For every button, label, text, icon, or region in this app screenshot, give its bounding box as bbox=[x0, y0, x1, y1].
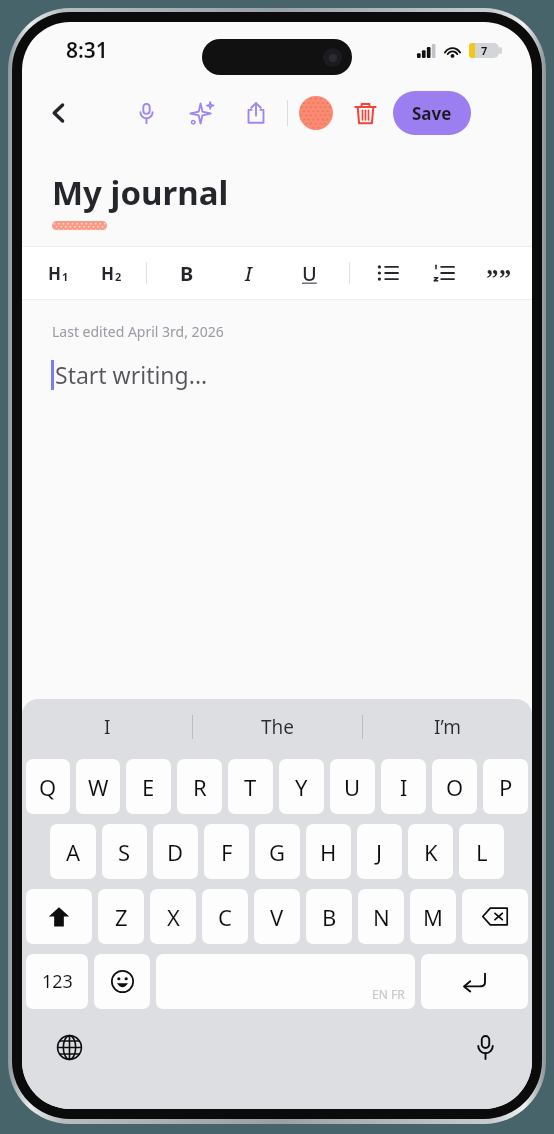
staticText: A bbox=[66, 837, 81, 867]
button[interactable]: Y bbox=[279, 759, 324, 814]
button[interactable]: J bbox=[357, 824, 402, 879]
staticText: B bbox=[180, 260, 194, 287]
staticText: 2 bbox=[115, 269, 122, 284]
button[interactable]: Q bbox=[26, 759, 70, 814]
staticText: 8:31 bbox=[66, 36, 108, 65]
staticText: 7 bbox=[481, 43, 488, 58]
button[interactable]: I bbox=[234, 259, 262, 287]
button[interactable]: Z bbox=[98, 889, 144, 944]
button[interactable]: 123 bbox=[26, 954, 88, 1009]
staticText: U bbox=[344, 772, 361, 802]
staticText: E bbox=[142, 772, 155, 802]
button[interactable]: L bbox=[459, 824, 504, 879]
staticText: O bbox=[446, 772, 464, 802]
button[interactable]: H bbox=[48, 262, 69, 285]
button[interactable]: I bbox=[381, 759, 426, 814]
button[interactable]: Save bbox=[393, 91, 471, 135]
staticText: 123 bbox=[42, 969, 73, 994]
staticText: Last edited April 3rd, 2026 bbox=[52, 322, 224, 341]
button[interactable]: Shift bbox=[26, 889, 92, 944]
staticText: I bbox=[400, 772, 408, 802]
staticText: Z bbox=[115, 902, 128, 932]
staticText: J bbox=[376, 837, 383, 867]
staticText: EN FR bbox=[372, 986, 405, 1002]
button[interactable]: A bbox=[50, 824, 96, 879]
staticText: F bbox=[221, 837, 233, 867]
staticText: V bbox=[270, 902, 284, 932]
staticText: P bbox=[499, 772, 513, 802]
button[interactable]: B bbox=[173, 259, 201, 287]
staticText: B bbox=[322, 902, 337, 932]
button[interactable]: Quote bbox=[486, 260, 512, 286]
button[interactable]: Back bbox=[38, 92, 80, 134]
staticText: R bbox=[193, 772, 207, 802]
staticText: K bbox=[424, 837, 438, 867]
button[interactable]: H bbox=[306, 824, 351, 879]
staticText: 1 bbox=[62, 269, 69, 284]
button[interactable]: X bbox=[150, 889, 196, 944]
button[interactable]: E bbox=[126, 759, 171, 814]
staticText: T bbox=[244, 772, 257, 802]
staticText: N bbox=[373, 902, 390, 932]
button[interactable]: Dictation bbox=[464, 1026, 506, 1068]
button[interactable]: Delete bbox=[346, 94, 384, 132]
button[interactable]: K bbox=[408, 824, 453, 879]
button[interactable]: I’m bbox=[363, 699, 532, 755]
staticText: Q bbox=[39, 772, 57, 802]
staticText: ”” bbox=[486, 260, 512, 286]
staticText: The bbox=[261, 714, 295, 740]
button[interactable]: N bbox=[358, 889, 404, 944]
staticText: I’m bbox=[434, 714, 461, 740]
staticText: Start writing... bbox=[55, 359, 208, 390]
button[interactable]: S bbox=[102, 824, 147, 879]
button[interactable]: AI assist bbox=[181, 93, 221, 133]
staticText: D bbox=[167, 837, 184, 867]
staticText: Y bbox=[295, 772, 308, 802]
button[interactable]: O bbox=[432, 759, 477, 814]
button[interactable]: Share bbox=[236, 93, 276, 133]
staticText: U bbox=[302, 260, 317, 287]
button[interactable]: W bbox=[76, 759, 120, 814]
button[interactable]: R bbox=[177, 759, 222, 814]
button[interactable]: Voice note bbox=[126, 93, 166, 133]
button[interactable]: Bullet list bbox=[376, 261, 400, 285]
staticText: L bbox=[476, 837, 488, 867]
staticText: S bbox=[118, 837, 131, 867]
staticText: My journal bbox=[52, 170, 229, 215]
button[interactable]: F bbox=[204, 824, 249, 879]
button[interactable]: Emoji bbox=[94, 954, 150, 1009]
staticText: I bbox=[245, 260, 252, 287]
button[interactable]: M bbox=[410, 889, 456, 944]
button[interactable]: Backspace bbox=[462, 889, 528, 944]
staticText: Save bbox=[412, 102, 452, 125]
staticText: G bbox=[269, 837, 286, 867]
button[interactable]: G bbox=[255, 824, 300, 879]
button[interactable]: Return bbox=[421, 954, 528, 1009]
button[interactable]: U bbox=[295, 259, 323, 287]
button[interactable]: V bbox=[254, 889, 300, 944]
button[interactable]: I bbox=[22, 699, 192, 755]
button[interactable]: Numbered list bbox=[432, 261, 456, 285]
button[interactable]: T bbox=[228, 759, 273, 814]
button[interactable]: P bbox=[483, 759, 528, 814]
button[interactable]: Colour bbox=[299, 96, 333, 130]
button[interactable]: U bbox=[330, 759, 375, 814]
button[interactable]: Change language bbox=[48, 1026, 90, 1068]
button[interactable]: The bbox=[193, 699, 362, 755]
staticText: W bbox=[88, 772, 109, 802]
button[interactable]: H bbox=[101, 262, 122, 285]
button[interactable]: C bbox=[202, 889, 248, 944]
button[interactable]: Space bbox=[156, 954, 415, 1009]
staticText: M bbox=[423, 902, 443, 932]
staticText: H bbox=[320, 837, 337, 867]
staticText: X bbox=[167, 902, 180, 932]
staticText: H bbox=[101, 262, 115, 285]
button[interactable]: B bbox=[306, 889, 352, 944]
staticText: H bbox=[48, 262, 62, 285]
staticText: I bbox=[104, 714, 111, 740]
button[interactable]: D bbox=[153, 824, 198, 879]
staticText: C bbox=[218, 902, 232, 932]
